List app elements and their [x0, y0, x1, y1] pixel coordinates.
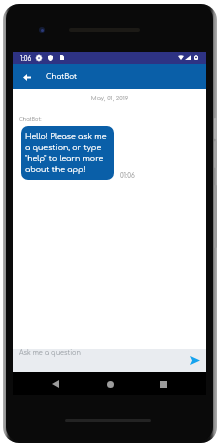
staticText: 01:06	[120, 172, 135, 179]
staticText: ChatBot:	[19, 117, 42, 123]
staticText: ChatBot	[46, 73, 77, 81]
staticText: Hello! Please ask me a question, or type…	[25, 132, 110, 174]
button[interactable]: Recents	[156, 377, 170, 391]
staticText: 1:06	[20, 55, 32, 62]
button[interactable]: Back	[48, 377, 62, 391]
staticText: May, 01, 2019	[13, 95, 206, 102]
staticText: Ask me a question	[19, 349, 81, 356]
button[interactable]: Back	[20, 70, 34, 84]
button[interactable]: Send	[188, 353, 202, 367]
button[interactable]: Home	[103, 377, 117, 391]
button[interactable]: Hello! Please ask me a question, or type…	[21, 126, 114, 180]
